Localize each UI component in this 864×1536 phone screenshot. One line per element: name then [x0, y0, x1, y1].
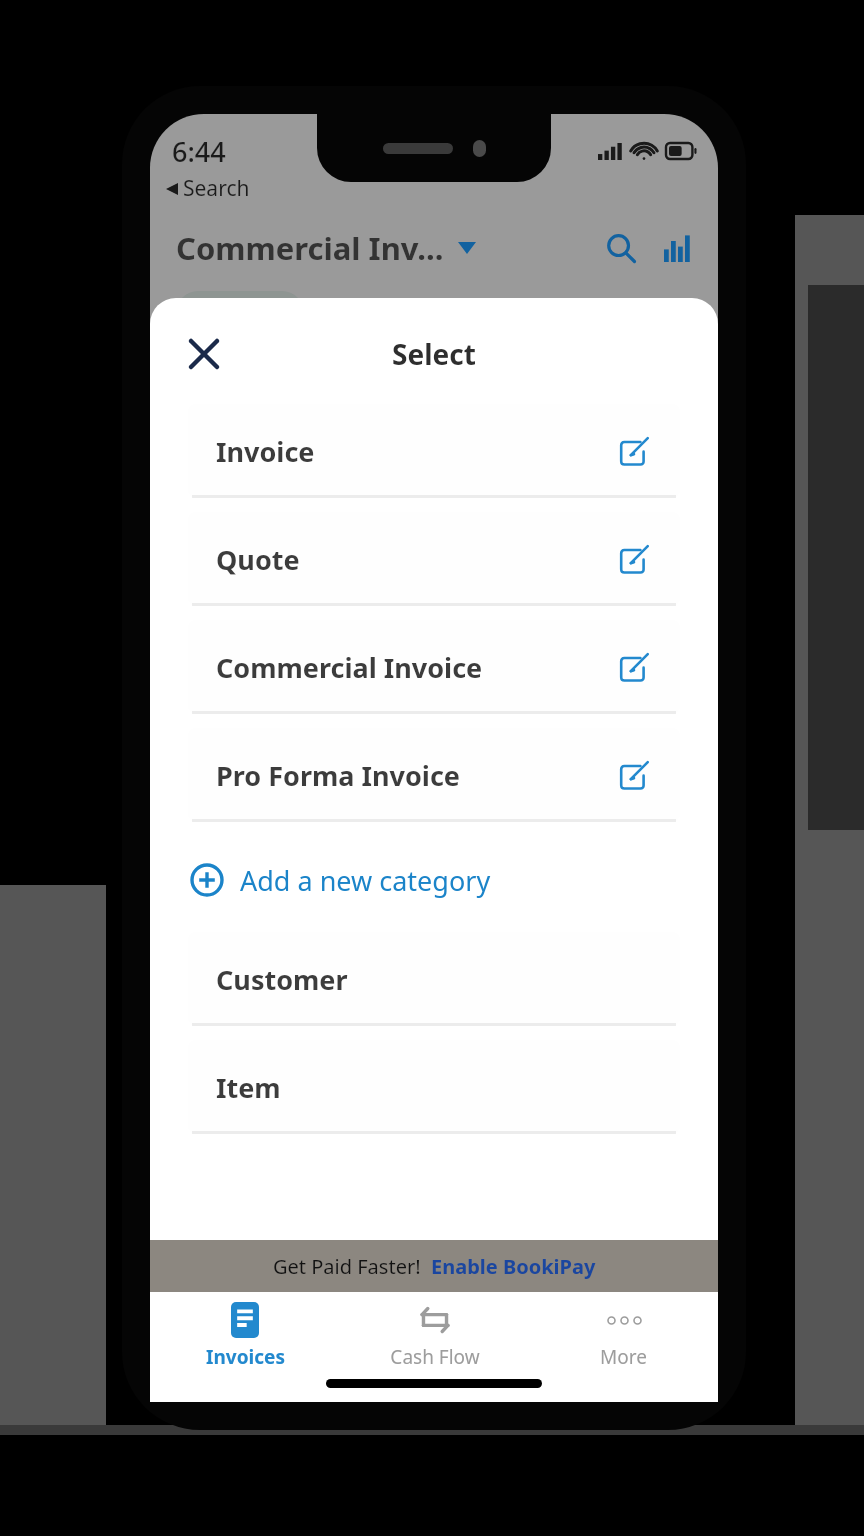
button[interactable]: Invoice: [188, 404, 680, 498]
staticText: Commercial Inv...: [176, 227, 444, 269]
staticText: Archived: [318, 291, 412, 322]
button[interactable]: Cash Flow: [340, 1292, 529, 1380]
button[interactable]: Item: [188, 1040, 680, 1134]
button[interactable]: Close: [178, 328, 230, 380]
button[interactable]: Add a new category: [190, 848, 491, 912]
staticText: Invoices: [206, 1344, 285, 1370]
staticText: Commercial Invoice: [216, 649, 483, 686]
button[interactable]: Quote: [188, 512, 680, 606]
staticText: Item: [216, 1069, 281, 1106]
button[interactable]: Pro Forma Invoice: [188, 728, 680, 822]
staticText: Get Paid Faster!: [273, 1253, 421, 1280]
staticText: More: [600, 1344, 647, 1370]
staticText: Enable BookiPay: [431, 1253, 596, 1280]
button[interactable]: Invoices: [150, 1292, 340, 1380]
button[interactable]: More: [529, 1292, 718, 1380]
staticText: Search: [183, 174, 250, 203]
staticText: Add a new category: [240, 862, 491, 899]
staticText: Customer: [216, 961, 348, 998]
staticText: Quote: [216, 541, 300, 578]
button[interactable]: Commercial Invoice: [188, 620, 680, 714]
staticText: Invoice: [216, 433, 315, 470]
staticText: Cash Flow: [390, 1344, 480, 1370]
staticText: By Date: [608, 291, 692, 322]
staticText: Pro Forma Invoice: [216, 757, 460, 794]
staticText: Select: [392, 335, 476, 373]
staticText: 6:44: [172, 133, 226, 170]
button[interactable]: Customer: [188, 932, 680, 1026]
